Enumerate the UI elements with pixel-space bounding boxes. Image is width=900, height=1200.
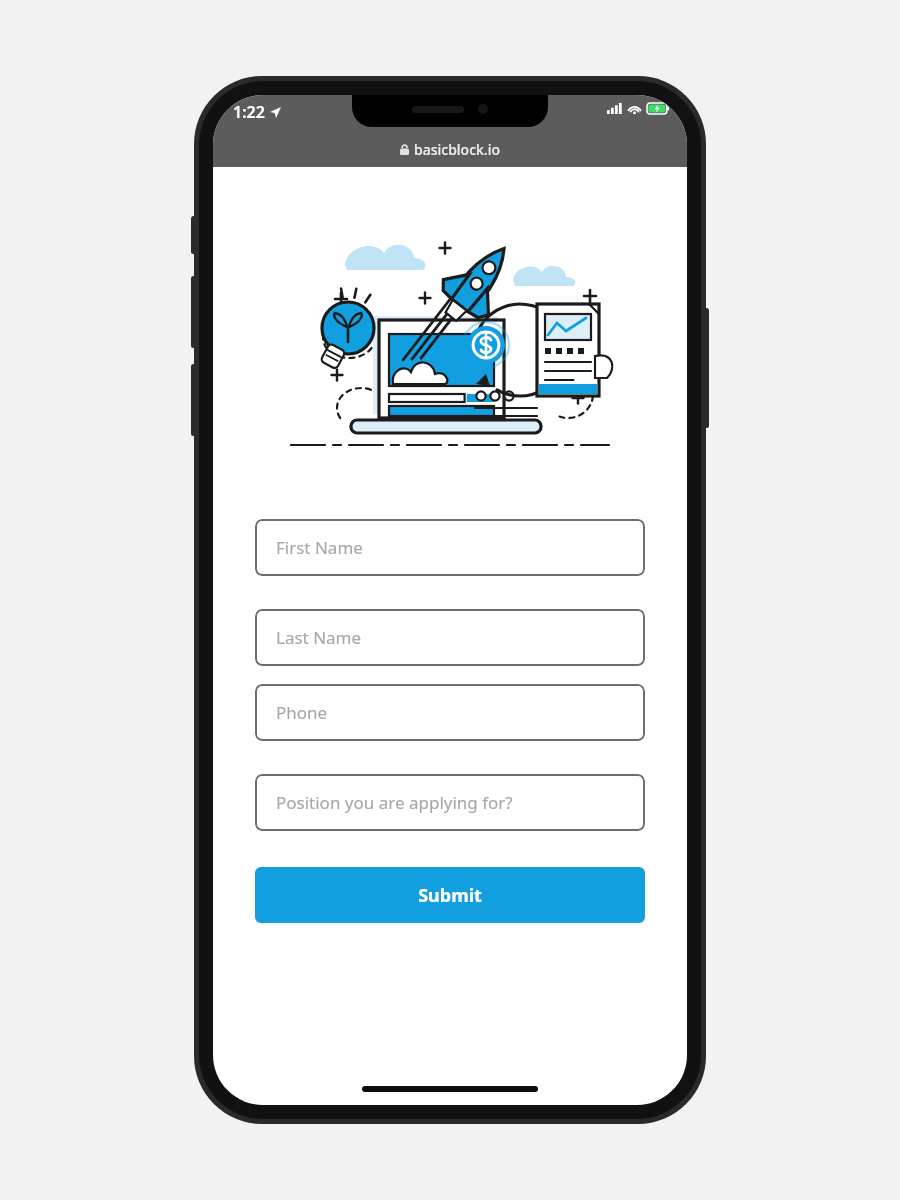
staticText: basicblock.io [414,140,501,159]
staticText: Last Name [276,626,362,649]
button[interactable]: basicblock.io [400,140,501,159]
staticText: Position you are applying for? [276,791,513,814]
button[interactable]: First Name [255,519,645,576]
staticText: Phone [276,701,328,724]
staticText: First Name [276,536,363,559]
staticText: 1:22 [233,101,265,123]
button[interactable]: Position you are applying for? [255,774,645,831]
staticText: Submit [418,883,482,908]
button[interactable]: Last Name [255,609,645,666]
button[interactable]: Phone [255,684,645,741]
button[interactable]: Submit [255,867,645,923]
